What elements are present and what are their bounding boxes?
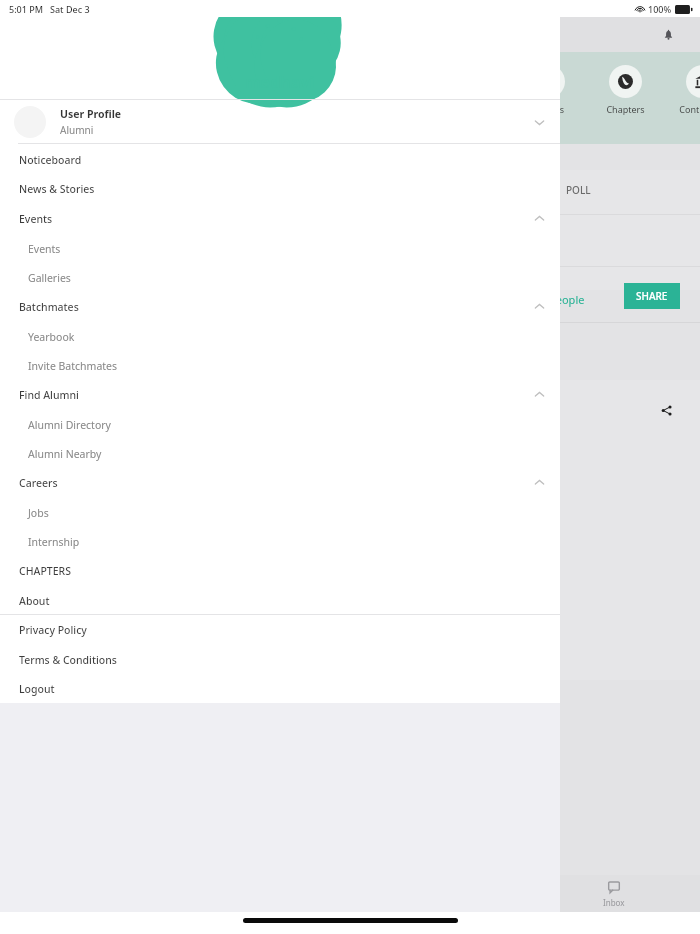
staticText: Groups: [533, 103, 564, 115]
staticText: Terms & Conditions: [19, 653, 117, 667]
staticText: Contribute: [679, 103, 700, 115]
button[interactable]: Contribute: [674, 65, 700, 115]
button[interactable]: Privacy Policy: [0, 615, 560, 644]
button[interactable]: Noticeboard: [0, 145, 560, 174]
button[interactable]: SHARE: [624, 283, 680, 309]
button[interactable]: Galleries: [0, 263, 560, 292]
staticText: Logout: [19, 682, 55, 696]
button[interactable]: Events: [0, 204, 560, 233]
staticText: Jobs: [28, 506, 49, 520]
staticText: CHAPTERS: [19, 564, 71, 578]
staticText: Events: [19, 212, 53, 226]
staticText: SHARE: [636, 289, 668, 303]
button[interactable]: News & Stories: [0, 174, 560, 203]
staticText: Events: [28, 242, 61, 256]
staticText: Find Alumni: [19, 388, 79, 402]
staticText: 5:01 PM Sat Dec 3: [9, 3, 90, 15]
staticText: Invite Batchmates: [28, 359, 118, 373]
staticText: people: [549, 292, 585, 307]
button[interactable]: Inbox: [592, 875, 636, 912]
button[interactable]: Chapters: [597, 65, 653, 115]
button[interactable]: Notifications: [656, 23, 680, 47]
staticText: Galleries: [28, 271, 71, 285]
button[interactable]: Find Alumni: [0, 380, 560, 409]
button[interactable]: Terms & Conditions: [0, 645, 560, 674]
staticText: Privacy Policy: [19, 623, 87, 637]
staticText: Noticeboard: [19, 153, 82, 167]
staticText: 100%: [648, 3, 672, 15]
staticText: Internship: [28, 535, 80, 549]
button[interactable]: Events: [0, 234, 560, 263]
button[interactable]: Invite Batchmates: [0, 351, 560, 380]
button[interactable]: Batchmates: [0, 292, 560, 321]
staticText: News & Stories: [19, 182, 95, 196]
staticText: Alumni: [60, 123, 94, 137]
button[interactable]: CHAPTERS: [0, 556, 560, 585]
button[interactable]: Logout: [0, 674, 560, 703]
button[interactable]: Yearbook: [0, 322, 560, 351]
button[interactable]: Share: [656, 400, 676, 420]
button[interactable]: Alumni Directory: [0, 410, 560, 439]
staticText: Careers: [19, 476, 58, 490]
staticText: Alumni Nearby: [28, 447, 102, 461]
button[interactable]: Careers: [0, 468, 560, 497]
button[interactable]: About: [0, 586, 560, 615]
staticText: Batchmates: [19, 300, 79, 314]
button[interactable]: Groups: [520, 65, 576, 115]
staticText: Chapters: [606, 103, 645, 115]
staticText: Alumni Directory: [28, 418, 111, 432]
staticText: Inbox: [603, 897, 625, 908]
button[interactable]: Jobs: [0, 498, 560, 527]
staticText: About: [19, 594, 50, 608]
staticText: POLL: [566, 183, 591, 197]
staticText: User Profile: [60, 107, 122, 121]
staticText: Yearbook: [28, 330, 75, 344]
button[interactable]: Alumni Nearby: [0, 439, 560, 468]
button[interactable]: Internship: [0, 527, 560, 556]
button[interactable]: User Profile: [0, 100, 560, 143]
